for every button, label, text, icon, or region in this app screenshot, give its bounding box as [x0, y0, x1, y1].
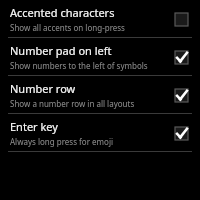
staticText: Show all accents on long-press — [10, 22, 125, 33]
button[interactable]: Checked — [171, 123, 191, 143]
staticText: Enter key — [10, 119, 58, 134]
button[interactable]: Accented characters — [0, 0, 200, 37]
staticText: Number pad on left — [10, 43, 112, 58]
button[interactable]: Number pad on left — [0, 38, 200, 75]
staticText: Number row — [10, 81, 76, 96]
staticText: Show numbers to the left of symbols — [10, 60, 148, 71]
staticText: Always long press for emoji — [10, 136, 114, 147]
button[interactable]: Number row — [0, 76, 200, 113]
staticText: Accented characters — [10, 5, 115, 20]
staticText: Show a number row in all layouts — [10, 98, 135, 109]
button[interactable]: Checked — [171, 47, 191, 67]
button[interactable]: Checked — [171, 85, 191, 105]
button[interactable]: Enter key — [0, 114, 200, 151]
button[interactable]: Unchecked — [171, 9, 191, 29]
